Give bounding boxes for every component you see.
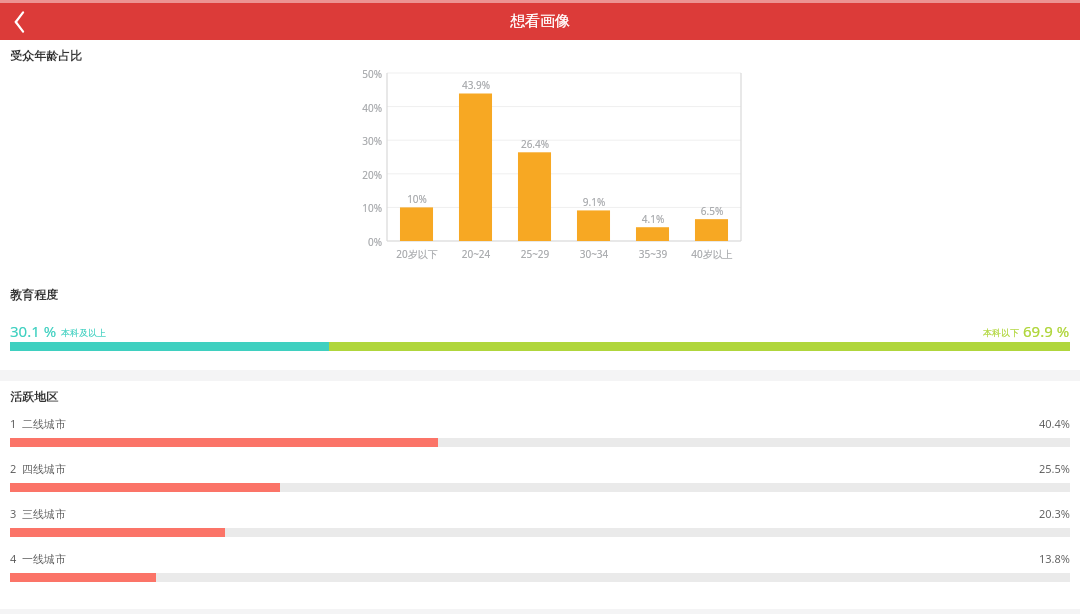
staticText: 4 xyxy=(10,551,17,566)
staticText: 本科以下 xyxy=(983,327,1019,338)
staticText: 10% xyxy=(352,201,382,215)
button[interactable]: 4 xyxy=(0,550,1080,595)
staticText: 想看画像 xyxy=(510,12,570,31)
staticText: 40% xyxy=(352,101,382,115)
staticText: 43.9% xyxy=(446,78,506,92)
staticText: 一线城市 xyxy=(22,552,66,566)
staticText: 25~29 xyxy=(502,247,568,261)
staticText: 10% xyxy=(387,192,447,206)
staticText: 三线城市 xyxy=(22,507,66,521)
staticText: 30% xyxy=(352,134,382,148)
button[interactable]: 1 xyxy=(0,415,1080,460)
staticText: 40岁以上 xyxy=(679,247,745,261)
staticText: 25.5% xyxy=(1039,461,1070,476)
staticText: 50% xyxy=(352,67,382,81)
staticText: 20岁以下 xyxy=(384,247,450,261)
staticText: 6.5% xyxy=(682,204,742,218)
staticText: 四线城市 xyxy=(22,462,66,476)
staticText: 40.4% xyxy=(1039,416,1070,431)
staticText: 活跃地区 xyxy=(10,389,58,404)
staticText: 9.1% xyxy=(564,195,624,209)
staticText: 3 xyxy=(10,506,17,521)
staticText: 2 xyxy=(10,461,17,476)
staticText: 1 xyxy=(10,416,17,431)
staticText: 20% xyxy=(352,168,382,182)
staticText: 本科及以上 xyxy=(61,327,106,338)
button[interactable]: 3 xyxy=(0,505,1080,550)
staticText: 4.1% xyxy=(623,212,683,226)
staticText: 二线城市 xyxy=(22,417,66,431)
staticText: 35~39 xyxy=(620,247,686,261)
button[interactable]: Back xyxy=(0,3,40,40)
staticText: 0% xyxy=(352,235,382,249)
staticText: 69.9 % xyxy=(1023,321,1070,339)
staticText: 受众年龄占比 xyxy=(10,48,82,63)
staticText: 30~34 xyxy=(561,247,627,261)
button[interactable] xyxy=(10,342,1070,351)
button[interactable]: 2 xyxy=(0,460,1080,505)
staticText: 26.4% xyxy=(505,137,565,151)
staticText: 13.8% xyxy=(1039,551,1070,566)
staticText: 20~24 xyxy=(443,247,509,261)
staticText: 30.1 % xyxy=(10,321,57,339)
staticText: 教育程度 xyxy=(10,287,58,302)
staticText: 20.3% xyxy=(1039,506,1070,521)
